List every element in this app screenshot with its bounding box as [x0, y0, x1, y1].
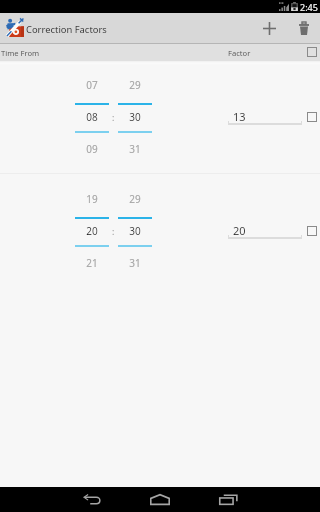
staticText: 20 [86, 224, 98, 238]
button[interactable]: Add [255, 13, 283, 43]
button[interactable]: Select row [303, 222, 320, 240]
button[interactable]: 19 [75, 175, 109, 288]
button[interactable]: 13 [228, 105, 302, 125]
button[interactable]: 20 [228, 219, 302, 239]
button[interactable]: 29 [118, 175, 152, 288]
staticText: Factor [228, 48, 251, 58]
staticText: 20 [233, 223, 246, 238]
button[interactable]: Select row [303, 108, 320, 126]
staticText: 07 [86, 78, 98, 92]
button[interactable]: Home [136, 487, 184, 512]
button[interactable]: Select all [303, 43, 320, 61]
staticText: 08 [86, 110, 98, 124]
staticText: 13 [233, 109, 246, 124]
staticText: : [112, 225, 115, 237]
staticText: 2:45 [300, 1, 318, 13]
staticText: 09 [86, 142, 98, 156]
staticText: 29 [129, 192, 141, 206]
staticText: 31 [129, 142, 141, 156]
staticText: 29 [129, 78, 141, 92]
button[interactable]: 29 [118, 61, 152, 174]
staticText: 30 [129, 110, 141, 124]
button[interactable]: Back [68, 487, 116, 512]
staticText: Time From [1, 48, 40, 58]
staticText: 19 [86, 192, 98, 206]
staticText: 21 [86, 256, 98, 270]
staticText: 31 [129, 256, 141, 270]
staticText: 30 [129, 224, 141, 238]
staticText: : [112, 111, 115, 123]
button[interactable]: Delete [290, 13, 318, 43]
button[interactable]: Recents [204, 487, 252, 512]
button[interactable]: 07 [75, 61, 109, 174]
staticText: Correction Factors [26, 23, 107, 36]
